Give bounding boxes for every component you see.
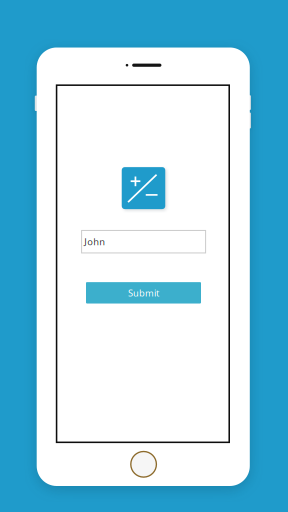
button[interactable]: John <box>82 230 206 253</box>
staticText: Submit <box>128 287 159 299</box>
staticText: John <box>84 235 105 248</box>
button[interactable]: Submit <box>86 282 201 303</box>
